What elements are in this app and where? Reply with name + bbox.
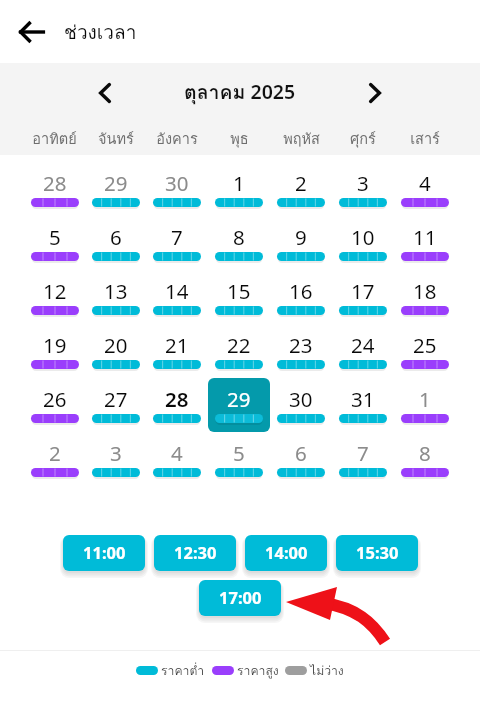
button[interactable]: 15 xyxy=(208,270,270,324)
button[interactable]: 11:00 xyxy=(63,535,145,571)
staticText: 3 xyxy=(357,169,369,197)
button[interactable]: 9 xyxy=(270,216,332,270)
button[interactable]: 2 xyxy=(270,162,332,216)
button[interactable]: 14 xyxy=(146,270,208,324)
staticText: 5 xyxy=(49,223,61,251)
staticText: 7 xyxy=(171,223,183,251)
staticText: 9 xyxy=(295,223,307,251)
button[interactable]: 1 xyxy=(208,162,270,216)
staticText: 1 xyxy=(233,169,245,197)
staticText: 5 xyxy=(233,439,245,467)
button[interactable]: 7 xyxy=(146,216,208,270)
staticText: 22 xyxy=(227,331,251,359)
button[interactable]: 22 xyxy=(208,324,270,378)
staticText: 13 xyxy=(104,277,128,305)
staticText: 15:30 xyxy=(356,541,399,563)
staticText: 31 xyxy=(351,385,375,413)
staticText: 6 xyxy=(110,223,122,251)
button[interactable]: 4 xyxy=(394,162,456,216)
staticText: 8 xyxy=(233,223,245,251)
button[interactable]: 20 xyxy=(85,324,146,378)
staticText: เสาร์ xyxy=(410,127,440,150)
staticText: ราคาสูง xyxy=(237,661,279,680)
button[interactable]: 30 xyxy=(146,162,208,216)
staticText: 28 xyxy=(165,385,189,413)
staticText: 4 xyxy=(419,169,431,197)
button[interactable]: 27 xyxy=(85,378,146,432)
button[interactable]: 8 xyxy=(208,216,270,270)
button[interactable]: 2 xyxy=(24,432,85,486)
button[interactable]: 10 xyxy=(332,216,394,270)
button[interactable]: 31 xyxy=(332,378,394,432)
staticText: 16 xyxy=(289,277,313,305)
button[interactable]: 15:30 xyxy=(336,535,418,571)
button[interactable]: 5 xyxy=(24,216,85,270)
button[interactable]: 16 xyxy=(270,270,332,324)
button[interactable]: 28 xyxy=(24,162,85,216)
button[interactable]: ราคาต่ำ xyxy=(136,661,205,680)
button[interactable]: 29 xyxy=(85,162,146,216)
button[interactable]: 25 xyxy=(394,324,456,378)
staticText: ช่วงเวลา xyxy=(64,17,137,47)
button[interactable]: 12:30 xyxy=(154,535,236,571)
staticText: อาทิตย์ xyxy=(32,127,77,150)
staticText: 2 xyxy=(49,439,61,467)
staticText: 17:00 xyxy=(219,586,262,608)
staticText: 11:00 xyxy=(83,541,126,563)
button[interactable]: 29 xyxy=(208,378,270,432)
staticText: 23 xyxy=(289,331,313,359)
button[interactable]: 3 xyxy=(85,432,146,486)
staticText: 28 xyxy=(43,169,67,197)
staticText: 29 xyxy=(227,385,251,413)
button[interactable]: 5 xyxy=(208,432,270,486)
staticText: 6 xyxy=(295,439,307,467)
staticText: 21 xyxy=(165,331,189,359)
staticText: ราคาต่ำ xyxy=(161,661,205,680)
staticText: พุธ xyxy=(230,127,249,150)
button[interactable]: 14:00 xyxy=(245,535,327,571)
button[interactable]: 26 xyxy=(24,378,85,432)
button[interactable]: 3 xyxy=(332,162,394,216)
staticText: 14 xyxy=(165,277,189,305)
staticText: 17 xyxy=(351,277,375,305)
staticText: 18 xyxy=(413,277,437,305)
staticText: 3 xyxy=(110,439,122,467)
button[interactable]: 23 xyxy=(270,324,332,378)
button[interactable]: 30 xyxy=(270,378,332,432)
button[interactable]: 1 xyxy=(394,378,456,432)
staticText: 19 xyxy=(43,331,67,359)
button[interactable]: 21 xyxy=(146,324,208,378)
button[interactable]: 8 xyxy=(394,432,456,486)
button[interactable]: 6 xyxy=(270,432,332,486)
button[interactable]: 13 xyxy=(85,270,146,324)
staticText: 7 xyxy=(357,439,369,467)
button[interactable]: 4 xyxy=(146,432,208,486)
staticText: 11 xyxy=(413,223,437,251)
button[interactable]: 19 xyxy=(24,324,85,378)
button[interactable]: 7 xyxy=(332,432,394,486)
button[interactable]: 12 xyxy=(24,270,85,324)
button[interactable]: 17:00 xyxy=(199,580,281,616)
staticText: 29 xyxy=(104,169,128,197)
staticText: ไม่ว่าง xyxy=(310,661,344,680)
button[interactable]: 11 xyxy=(394,216,456,270)
button[interactable]: Next month xyxy=(351,69,399,117)
button[interactable]: Back xyxy=(0,0,64,63)
button[interactable]: ราคาสูง xyxy=(212,661,279,680)
staticText: ตุลาคม 2025 xyxy=(184,77,296,108)
staticText: 20 xyxy=(104,331,128,359)
staticText: 12 xyxy=(43,277,67,305)
button[interactable]: 17 xyxy=(332,270,394,324)
button[interactable]: ไม่ว่าง xyxy=(285,661,344,680)
staticText: 8 xyxy=(419,439,431,467)
button[interactable]: Previous month xyxy=(81,69,129,117)
staticText: 24 xyxy=(351,331,375,359)
button[interactable]: 18 xyxy=(394,270,456,324)
button[interactable]: 24 xyxy=(332,324,394,378)
button[interactable]: 6 xyxy=(85,216,146,270)
staticText: พฤหัส xyxy=(283,127,320,150)
button[interactable]: 28 xyxy=(146,378,208,432)
staticText: 27 xyxy=(104,385,128,413)
staticText: 26 xyxy=(43,385,67,413)
staticText: 30 xyxy=(289,385,313,413)
